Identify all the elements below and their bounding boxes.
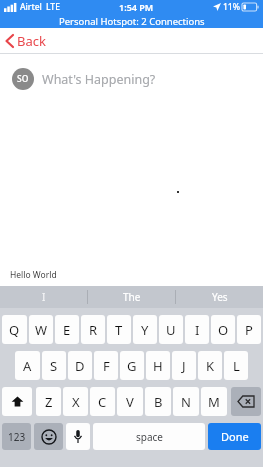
staticText: The bbox=[123, 290, 141, 304]
staticText: Back bbox=[17, 32, 46, 50]
button[interactable]: U bbox=[159, 315, 183, 344]
staticText: O bbox=[218, 321, 229, 339]
staticText: Airtel bbox=[20, 1, 42, 13]
button[interactable]: space bbox=[93, 423, 205, 450]
staticText: F bbox=[103, 357, 110, 375]
button[interactable]: O bbox=[211, 315, 235, 344]
button[interactable]: The bbox=[88, 286, 175, 308]
button[interactable]: C bbox=[90, 387, 115, 416]
button[interactable]: R bbox=[81, 315, 105, 344]
button[interactable]: M bbox=[201, 387, 227, 416]
button[interactable]: Q bbox=[2, 315, 27, 344]
button[interactable]: G bbox=[120, 351, 144, 380]
staticText: I bbox=[195, 321, 200, 339]
button[interactable]: L bbox=[224, 351, 248, 380]
staticText: Q bbox=[9, 321, 20, 339]
staticText: W bbox=[35, 321, 48, 339]
button[interactable]: Y bbox=[133, 315, 157, 344]
staticText: T bbox=[115, 321, 123, 339]
staticText: A bbox=[23, 357, 32, 375]
button[interactable]: Emoji bbox=[34, 423, 63, 450]
button[interactable]: T bbox=[107, 315, 131, 344]
staticText: I bbox=[42, 290, 46, 304]
staticText: Y bbox=[141, 321, 149, 339]
staticText: Yes bbox=[212, 290, 228, 304]
button[interactable]: J bbox=[172, 351, 196, 380]
staticText: space bbox=[136, 430, 163, 444]
staticText: 1:54 PM bbox=[119, 1, 154, 13]
button[interactable]: Z bbox=[36, 387, 61, 416]
button[interactable]: F bbox=[94, 351, 118, 380]
button[interactable]: X bbox=[63, 387, 88, 416]
staticText: G bbox=[127, 357, 137, 375]
staticText: M bbox=[208, 393, 220, 411]
staticText: Hello World bbox=[10, 269, 57, 281]
button[interactable]: Backspace bbox=[231, 387, 261, 416]
staticText: U bbox=[166, 321, 176, 339]
button[interactable]: A bbox=[15, 351, 40, 380]
button[interactable]: Done bbox=[208, 423, 261, 450]
staticText: B bbox=[154, 393, 163, 411]
button[interactable]: N bbox=[173, 387, 199, 416]
staticText: SO bbox=[17, 73, 29, 85]
button[interactable]: D bbox=[68, 351, 92, 380]
staticText: D bbox=[75, 357, 85, 375]
staticText: 123 bbox=[8, 430, 26, 444]
staticText: S bbox=[50, 357, 58, 375]
button[interactable]: S bbox=[42, 351, 66, 380]
staticText: J bbox=[182, 357, 186, 375]
button[interactable]: W bbox=[29, 315, 53, 344]
staticText: What's Happening? bbox=[42, 71, 156, 88]
button[interactable]: I bbox=[185, 315, 209, 344]
button[interactable]: V bbox=[117, 387, 143, 416]
staticText: Personal Hotspot: 2 Connections bbox=[59, 15, 205, 28]
staticText: X bbox=[72, 393, 80, 411]
staticText: L bbox=[233, 357, 240, 375]
button[interactable]: K bbox=[198, 351, 222, 380]
staticText: Done bbox=[221, 429, 249, 444]
button[interactable]: Shift bbox=[2, 387, 32, 416]
staticText: H bbox=[153, 357, 163, 375]
staticText: R bbox=[89, 321, 98, 339]
staticText: N bbox=[181, 393, 191, 411]
button[interactable]: B bbox=[145, 387, 171, 416]
button[interactable]: Back bbox=[0, 28, 56, 54]
button[interactable]: Yes bbox=[176, 286, 263, 308]
staticText: P bbox=[245, 321, 253, 339]
button[interactable]: I bbox=[0, 286, 87, 308]
button[interactable]: E bbox=[55, 315, 79, 344]
staticText: K bbox=[206, 357, 215, 375]
staticText: C bbox=[98, 393, 107, 411]
staticText: E bbox=[63, 321, 71, 339]
button[interactable]: H bbox=[146, 351, 170, 380]
staticText: Z bbox=[45, 393, 53, 411]
staticText: V bbox=[126, 393, 134, 411]
button[interactable]: P bbox=[237, 315, 261, 344]
button[interactable]: Dictation bbox=[66, 423, 90, 450]
staticText: LTE bbox=[46, 1, 60, 13]
button[interactable]: 123 bbox=[2, 423, 31, 450]
staticText: 11% bbox=[223, 1, 240, 13]
